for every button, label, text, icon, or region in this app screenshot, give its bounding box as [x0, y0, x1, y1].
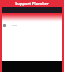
button[interactable]	[3, 23, 61, 28]
button[interactable]: Support Plumber	[15, 1, 49, 6]
